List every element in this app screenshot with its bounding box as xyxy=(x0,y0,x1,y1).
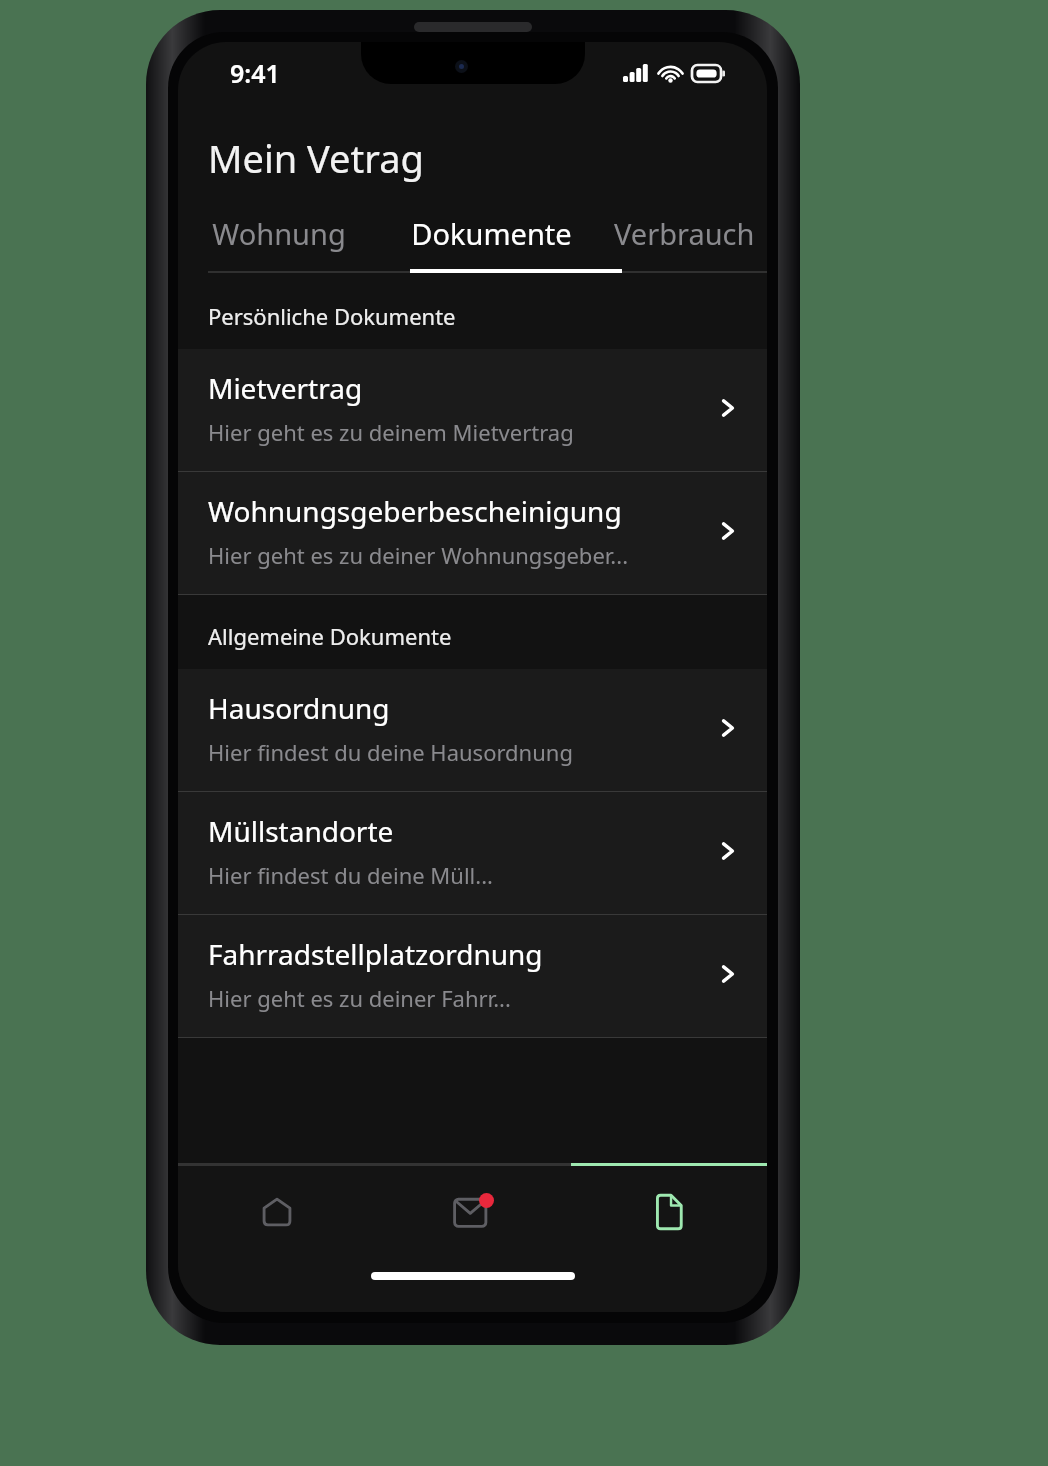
staticText: Fahrradstellplatzordnung xyxy=(208,935,543,973)
button[interactable]: Fahrradstellplatzordnung xyxy=(178,915,767,1037)
staticText: Hier geht es zu deinem Mietvertrag xyxy=(208,417,574,447)
staticText: Hausordnung xyxy=(208,689,390,727)
button[interactable]: Verbrauch xyxy=(602,214,767,273)
button[interactable]: Messages xyxy=(375,1166,571,1258)
staticText: Hier geht es zu deiner Fahrr... xyxy=(208,983,511,1013)
staticText: Müllstandorte xyxy=(208,812,394,850)
staticText: Mein Vetrag xyxy=(208,132,424,184)
staticText: Wohnungsgeberbescheinigung xyxy=(208,492,622,530)
staticText: Persönliche Dokumente xyxy=(208,301,456,331)
staticText: Hier findest du deine Hausordnung xyxy=(208,737,573,767)
staticText: Allgemeine Dokumente xyxy=(208,621,452,651)
button[interactable]: Mietvertrag xyxy=(178,349,767,471)
button[interactable]: Hausordnung xyxy=(178,669,767,791)
button[interactable]: Home xyxy=(178,1166,375,1258)
staticText: Verbrauch xyxy=(614,214,755,253)
staticText: Hier geht es zu deiner Wohnungsgeber... xyxy=(208,540,629,570)
button[interactable]: Müllstandorte xyxy=(178,792,767,914)
staticText: Dokumente xyxy=(411,214,572,253)
staticText: Hier findest du deine Müll... xyxy=(208,860,493,890)
button[interactable]: Wohnung xyxy=(178,214,380,273)
button[interactable]: Wohnungsgeberbescheinigung xyxy=(178,472,767,594)
staticText: Mietvertrag xyxy=(208,369,363,407)
staticText: Wohnung xyxy=(212,214,346,253)
button[interactable]: Documents xyxy=(571,1166,767,1258)
button[interactable]: Dokumente xyxy=(380,214,602,273)
staticText: 9:41 xyxy=(230,56,280,90)
